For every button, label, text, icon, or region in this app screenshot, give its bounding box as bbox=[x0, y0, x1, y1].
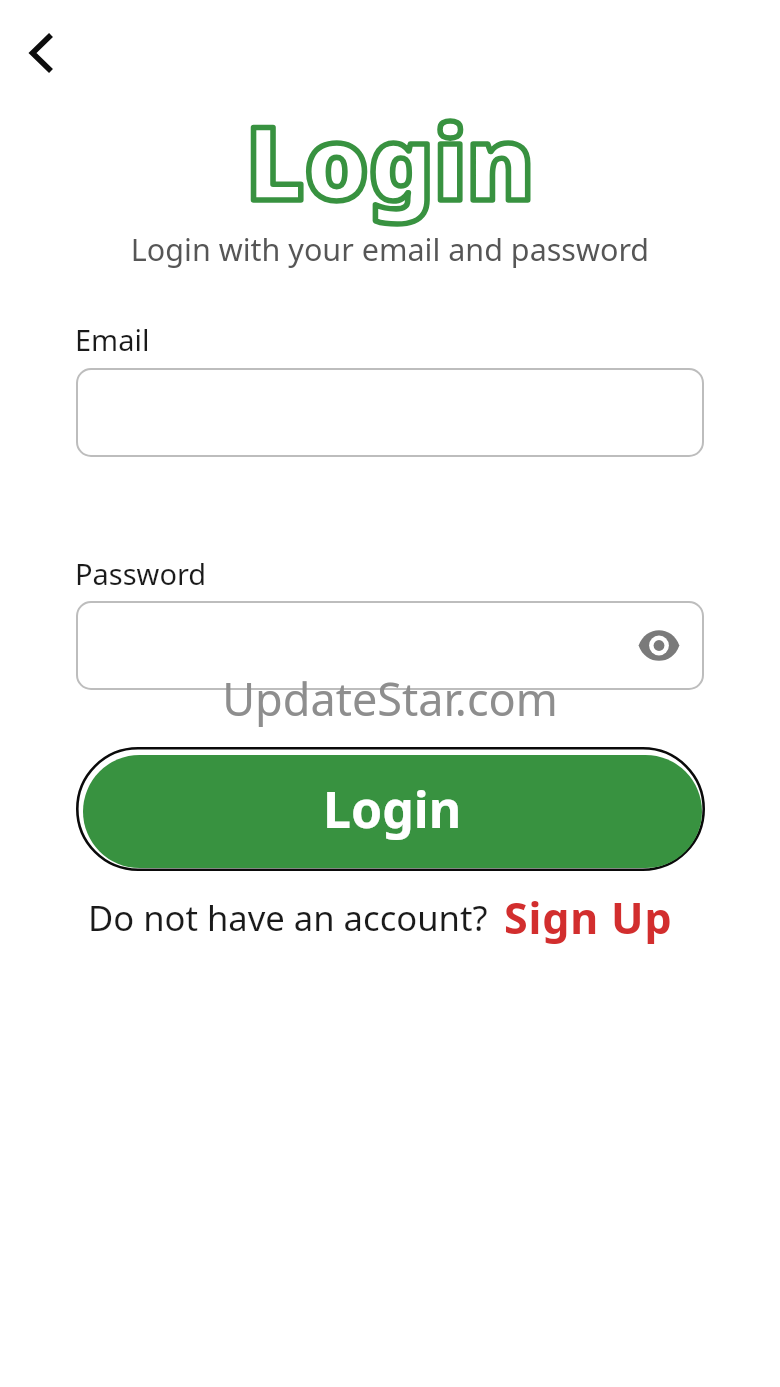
button[interactable]: Login bbox=[83, 755, 702, 868]
staticText: UpdateStar.com bbox=[0, 668, 780, 729]
button[interactable]: Back bbox=[4, 12, 74, 92]
staticText: Do not have an account? bbox=[88, 894, 488, 941]
staticText: Password bbox=[75, 554, 207, 593]
button[interactable]: Sign Up bbox=[504, 888, 673, 947]
button[interactable]: Show password bbox=[76, 601, 704, 690]
staticText: Login bbox=[323, 775, 462, 843]
staticText: Login with your email and password bbox=[0, 228, 780, 270]
button[interactable] bbox=[76, 368, 704, 457]
button[interactable]: Show password bbox=[638, 630, 680, 661]
staticText: Login bbox=[0, 92, 780, 230]
staticText: Sign Up bbox=[504, 888, 673, 947]
staticText: Email bbox=[75, 320, 150, 359]
